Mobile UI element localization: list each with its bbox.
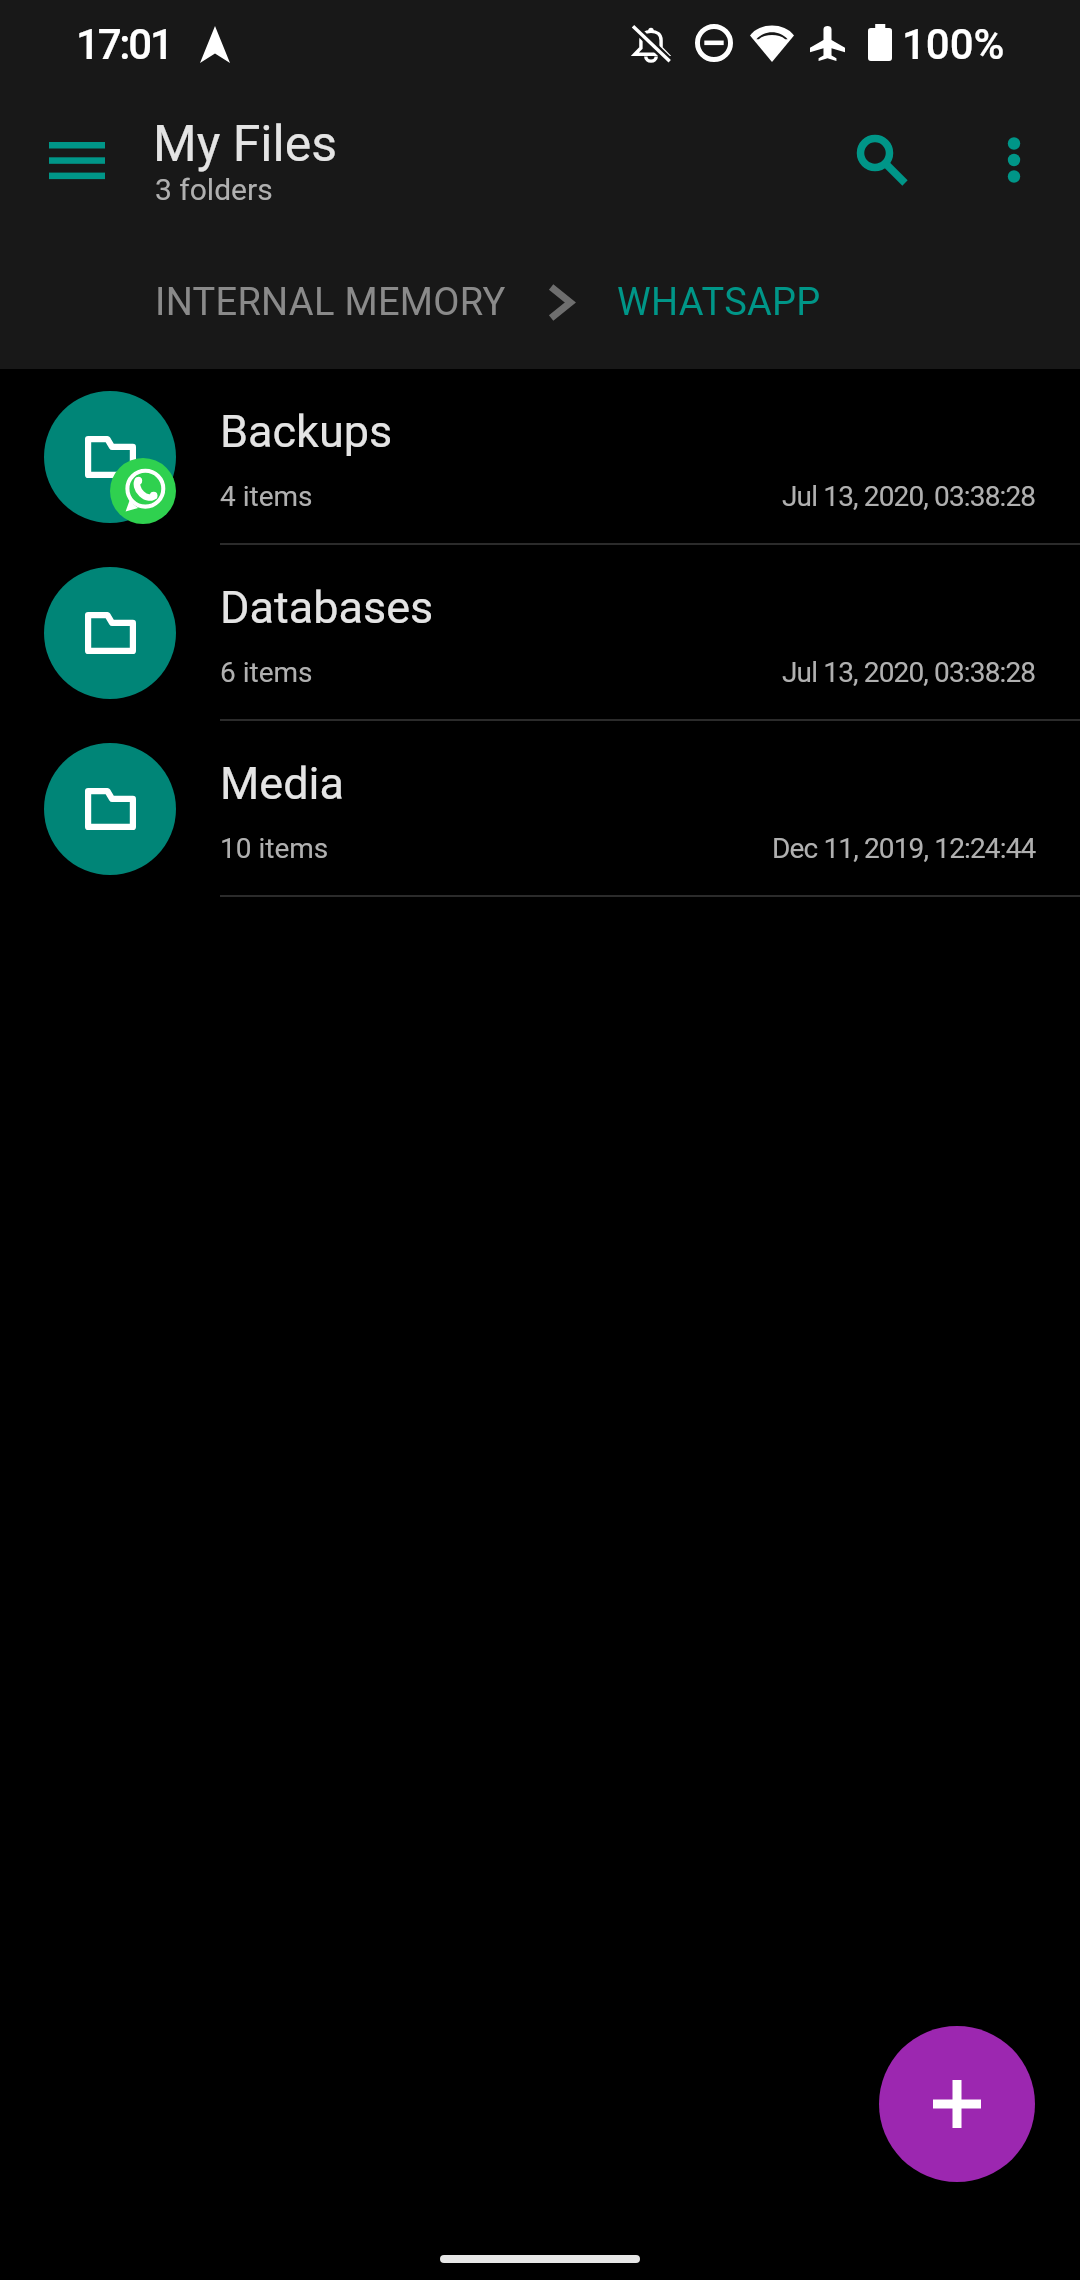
button[interactable]: Search (833, 111, 917, 195)
staticText: 3 folders (155, 172, 273, 207)
button[interactable]: Open navigation menu (1, 97, 153, 229)
button[interactable]: Media (0, 721, 1080, 897)
staticText: 100% (902, 20, 1005, 69)
staticText: WHATSAPP (617, 280, 821, 324)
staticText: My Files (153, 115, 337, 174)
staticText: Jul 13, 2020, 03:38:28 (782, 656, 1036, 689)
staticText: Dec 11, 2019, 12:24:44 (772, 832, 1036, 865)
button[interactable]: More options (966, 112, 1062, 208)
staticText: Jul 13, 2020, 03:38:28 (782, 480, 1036, 513)
button[interactable]: INTERNAL MEMORY (155, 280, 511, 324)
staticText: 10 items (220, 832, 329, 865)
staticText: 6 items (220, 656, 313, 689)
staticText: Backups (220, 405, 393, 458)
staticText: 4 items (220, 480, 313, 513)
staticText: 17:01 (76, 20, 172, 69)
button[interactable]: Backups (0, 369, 1080, 545)
staticText: Media (220, 757, 344, 810)
button[interactable]: Databases (0, 545, 1080, 721)
button[interactable]: WHATSAPP (617, 280, 827, 324)
button[interactable]: Add (879, 2026, 1035, 2182)
staticText: INTERNAL MEMORY (155, 280, 506, 324)
staticText: Databases (220, 581, 434, 634)
